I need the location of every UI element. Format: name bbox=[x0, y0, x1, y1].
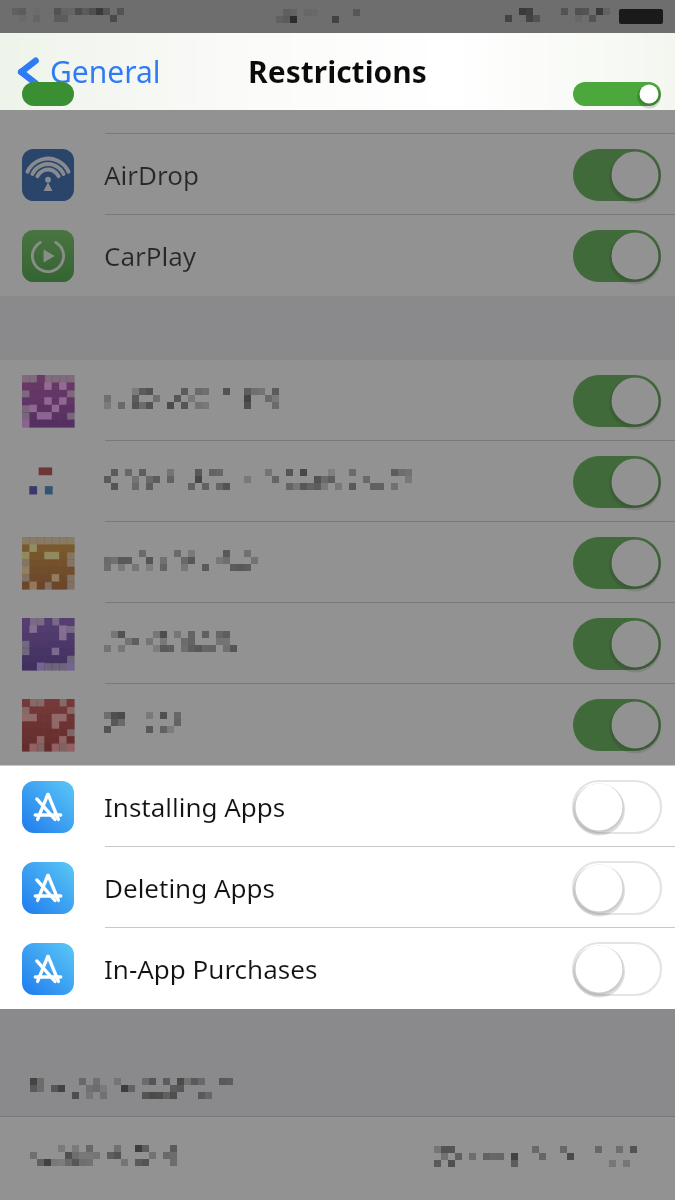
button[interactable]: Toggle on bbox=[573, 618, 661, 670]
button[interactable]: Restriction setting bbox=[0, 603, 675, 684]
button[interactable]: CarPlay bbox=[0, 215, 675, 296]
button[interactable]: Toggle on bbox=[573, 699, 661, 751]
staticText: CarPlay bbox=[104, 238, 197, 273]
staticText: Deleting Apps bbox=[104, 870, 275, 905]
button[interactable]: Toggle on bbox=[573, 537, 661, 589]
button[interactable]: Toggle off bbox=[573, 943, 661, 995]
button[interactable]: Toggle on bbox=[573, 149, 661, 201]
button[interactable]: AirDrop bbox=[0, 134, 675, 215]
staticText: In-App Purchases bbox=[104, 951, 318, 986]
button[interactable]: Restriction setting bbox=[0, 360, 675, 441]
button[interactable]: Restriction setting bbox=[0, 1116, 675, 1200]
staticText: AirDrop bbox=[104, 157, 199, 192]
button[interactable]: Toggle off bbox=[573, 862, 661, 914]
button[interactable]: Toggle on bbox=[573, 82, 661, 106]
staticText: General bbox=[50, 51, 161, 92]
button[interactable]: Deleting Apps bbox=[0, 847, 675, 928]
button[interactable]: Toggle on bbox=[573, 375, 661, 427]
button[interactable]: Restriction setting bbox=[0, 522, 675, 603]
staticText: Restrictions bbox=[248, 51, 427, 92]
button[interactable]: Installing Apps bbox=[0, 766, 675, 847]
button[interactable]: Toggle on bbox=[573, 230, 661, 282]
button[interactable]: Toggle on bbox=[573, 456, 661, 508]
button[interactable]: General bbox=[14, 51, 161, 92]
button[interactable]: Restriction setting bbox=[0, 684, 675, 765]
button[interactable]: In-App Purchases bbox=[0, 928, 675, 1009]
button[interactable]: Restriction setting bbox=[0, 441, 675, 522]
button[interactable]: Toggle off bbox=[573, 781, 661, 833]
staticText: Installing Apps bbox=[104, 789, 286, 824]
